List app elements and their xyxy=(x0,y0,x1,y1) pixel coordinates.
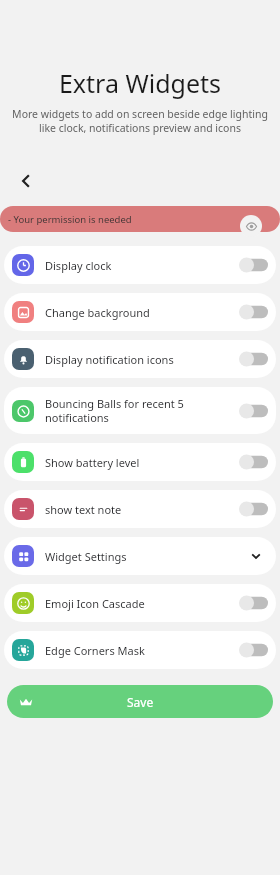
staticText: show text note xyxy=(45,502,232,517)
button[interactable]: Edge Corners Mask xyxy=(4,631,276,669)
button[interactable]: Show battery level xyxy=(4,443,276,481)
button[interactable]: Toggle xyxy=(238,257,268,273)
staticText: Bouncing Balls for recent 5 notification… xyxy=(45,396,232,425)
button[interactable]: Toggle xyxy=(238,351,268,367)
button[interactable]: Toggle xyxy=(238,403,268,419)
button[interactable]: Emoji Icon Cascade xyxy=(4,584,276,622)
button[interactable]: Widget Settings xyxy=(4,537,276,575)
button[interactable]: Preview xyxy=(240,215,262,237)
staticText: More widgets to add on screen beside edg… xyxy=(6,107,274,135)
button[interactable]: Display notification icons xyxy=(4,340,276,378)
button[interactable]: Change background xyxy=(4,293,276,331)
staticText: Change background xyxy=(45,305,232,320)
button[interactable]: Save xyxy=(7,685,273,718)
button[interactable]: Bouncing Balls for recent 5 notification… xyxy=(4,387,276,434)
button[interactable]: Toggle xyxy=(238,642,268,658)
staticText: Emoji Icon Cascade xyxy=(45,596,232,611)
staticText: Save xyxy=(127,694,154,710)
button[interactable]: Display clock xyxy=(4,246,276,284)
button[interactable]: show text note xyxy=(4,490,276,528)
button[interactable]: Toggle xyxy=(238,454,268,470)
button[interactable]: Toggle xyxy=(238,595,268,611)
staticText: Edge Corners Mask xyxy=(45,643,232,658)
staticText: Display clock xyxy=(45,258,232,273)
staticText: Display notification icons xyxy=(45,352,232,367)
button[interactable]: Back xyxy=(10,165,42,197)
staticText: Show battery level xyxy=(45,455,232,470)
button[interactable]: Toggle xyxy=(238,501,268,517)
button[interactable]: - Your permission is needed xyxy=(0,206,280,232)
staticText: Widget Settings xyxy=(45,549,242,564)
staticText: - Your permission is needed xyxy=(8,213,132,226)
staticText: Extra Widgets xyxy=(0,66,280,100)
button[interactable]: Toggle xyxy=(238,304,268,320)
